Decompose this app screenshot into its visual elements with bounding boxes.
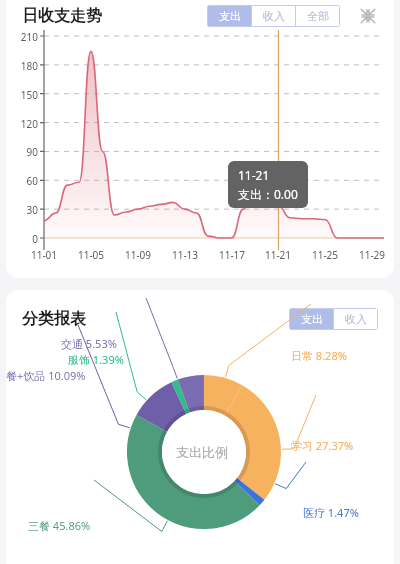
staticText: 30 [6, 203, 38, 217]
staticText: 210 [6, 30, 38, 44]
staticText: 11-01 [26, 248, 62, 262]
staticText: 医疗 1.47% [303, 505, 359, 520]
staticText: 交通 5.53% [61, 336, 117, 351]
staticText: 11-21 [260, 248, 296, 262]
staticText: 支出 [301, 312, 323, 326]
staticText: 学习 27.37% [291, 438, 354, 453]
button[interactable]: 支出 [208, 6, 251, 26]
staticText: 90 [6, 145, 38, 159]
staticText: 0 [6, 232, 38, 246]
staticText: 11-21 [238, 167, 270, 183]
staticText: 150 [6, 88, 38, 102]
staticText: 收入 [263, 9, 285, 23]
staticText: 180 [6, 59, 38, 73]
staticText: 支出比例 [176, 444, 228, 460]
staticText: 日常 8.28% [291, 348, 347, 363]
staticText: 支出 [219, 9, 241, 23]
button[interactable]: 支出 [290, 309, 333, 329]
staticText: 11-17 [214, 248, 250, 262]
button[interactable]: Collapse chart [354, 2, 382, 30]
staticText: 60 [6, 174, 38, 188]
staticText: 日收支走势 [22, 6, 102, 26]
staticText: 11-25 [307, 248, 343, 262]
staticText: 收入 [345, 312, 367, 326]
button[interactable]: 全部 [296, 6, 339, 26]
staticText: 全部 [307, 9, 329, 23]
staticText: 服饰 1.39% [68, 352, 124, 367]
staticText: 11-29 [354, 248, 390, 262]
staticText: 餐+饮品 10.09% [6, 368, 86, 383]
staticText: 三餐 45.86% [28, 518, 91, 533]
staticText: 120 [6, 117, 38, 131]
button[interactable]: 收入 [334, 309, 377, 329]
staticText: 11-09 [120, 248, 156, 262]
staticText: 支出：0.00 [238, 186, 298, 202]
button[interactable]: 收入 [252, 6, 295, 26]
staticText: 11-13 [167, 248, 203, 262]
staticText: 11-05 [73, 248, 109, 262]
staticText: 分类报表 [22, 309, 86, 329]
